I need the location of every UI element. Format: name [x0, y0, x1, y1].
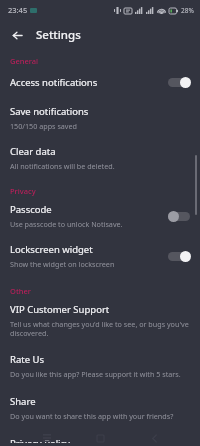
button[interactable]: Clear data	[0, 142, 200, 174]
staticText: Settings	[36, 27, 81, 43]
button[interactable]: Passcode	[0, 200, 200, 232]
button[interactable]: Access notifications	[0, 72, 200, 92]
button[interactable]: Toggle off	[166, 209, 192, 223]
button[interactable]: Lockscreen widget	[0, 240, 200, 272]
staticText: Lockscreen widget	[10, 243, 93, 256]
staticText: General	[10, 56, 39, 66]
staticText: Clear data	[10, 145, 56, 158]
staticText: Other	[10, 286, 31, 296]
staticText: VIP Customer Support	[10, 303, 110, 316]
staticText: Rate Us	[10, 353, 44, 366]
staticText: Share	[10, 395, 36, 408]
staticText: Use passcode to unlock Notisave.	[10, 219, 123, 229]
staticText: Privacy	[10, 186, 36, 196]
staticText: Save notifications	[10, 105, 89, 118]
staticText: All notifications will be deleted.	[10, 161, 115, 171]
staticText: Show the widget on lockscreen	[10, 259, 115, 269]
button[interactable]: Rate Us	[0, 350, 200, 382]
button[interactable]: Toggle on	[166, 249, 192, 263]
staticText: Passcode	[10, 203, 52, 216]
button[interactable]: VIP Customer Support	[0, 300, 200, 342]
button[interactable]: Recents	[40, 431, 54, 445]
button[interactable]: Share	[0, 392, 200, 424]
button[interactable]: Toggle on	[166, 75, 192, 89]
staticText: 28%	[181, 6, 194, 15]
staticText: Tell us what changes you'd like to see, …	[10, 319, 192, 339]
button[interactable]: Back	[6, 24, 28, 46]
staticText: Access notifications	[10, 76, 98, 89]
button[interactable]: Save notifications	[0, 102, 200, 134]
staticText: Privacy Policy	[10, 437, 70, 443]
staticText: 150/150 apps saved	[10, 121, 77, 131]
button[interactable]: Privacy Policy	[0, 434, 200, 446]
staticText: 23:45	[8, 5, 28, 15]
staticText: Do you want to share this app with your …	[10, 411, 174, 421]
staticText: Do you like this app? Please support it …	[10, 369, 181, 379]
